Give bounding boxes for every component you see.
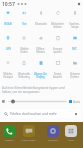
- button[interactable]: Bildschirm drehen: [49, 11, 66, 36]
- staticText: Mobiler: [3, 72, 13, 75]
- button[interactable]: NFC: [66, 36, 83, 61]
- staticText: sparen: [53, 50, 62, 53]
- staticText: Hotspot: [3, 75, 13, 78]
- button[interactable]: Nachrichten: [23, 125, 35, 137]
- staticText: Nachrichten: [21, 138, 36, 141]
- staticText: Internet: [48, 138, 58, 141]
- button[interactable]: Offline- Modus: [32, 36, 49, 61]
- staticText: drehen: [53, 25, 62, 28]
- button[interactable]: GPS: [0, 36, 16, 61]
- staticText: Display: [36, 75, 45, 78]
- staticText: Telefon: [5, 138, 14, 141]
- staticText: Tethering: [18, 75, 30, 78]
- button[interactable]: Auto brightness: [69, 100, 72, 103]
- staticText: Taschen-: [69, 22, 80, 25]
- button[interactable]: Bluetooth- Tethering: [16, 61, 32, 86]
- staticText: Ordner: [70, 75, 79, 78]
- staticText: Energie-: [53, 47, 63, 50]
- staticText: Always On: [34, 72, 47, 75]
- staticText: GPS: [6, 47, 11, 50]
- button[interactable]: Smart- Ansicht: [49, 61, 66, 86]
- button[interactable]: Brightness: [1, 99, 6, 104]
- staticText: Daten: [20, 50, 28, 53]
- button[interactable]: Telefon: [3, 125, 15, 137]
- button[interactable]: Ton: [16, 11, 32, 36]
- staticText: halten, um sie anzupassen.: [2, 90, 41, 94]
- staticText: Bluetooth-: [18, 72, 31, 75]
- staticText: Bluetooth: [35, 22, 47, 25]
- staticText: Auf eine Schnelleinstellungstaste tippen…: [2, 86, 65, 90]
- staticText: WLAN: [4, 22, 12, 25]
- staticText: Bildschirm: [51, 22, 64, 25]
- staticText: Sicherer: [70, 72, 80, 75]
- staticText: Modus: [36, 50, 45, 53]
- staticText: Offline-: [36, 47, 45, 50]
- button[interactable]: Apps: [65, 125, 77, 137]
- button[interactable]: Telefon durchsuchen und mehr: [1, 109, 81, 118]
- button[interactable]: Mobiler Hotspot: [0, 61, 16, 86]
- button[interactable]: Sicherer Ordner: [66, 61, 83, 86]
- staticText: Apps: [68, 138, 74, 141]
- button[interactable]: Always On Display: [32, 61, 49, 86]
- button[interactable]: Bluetooth: [32, 11, 49, 36]
- button[interactable]: Taschen- lampe: [66, 11, 83, 36]
- staticText: Mobile: [20, 47, 29, 50]
- button[interactable]: WLAN: [0, 11, 16, 36]
- staticText: Smart-: [54, 72, 62, 75]
- staticText: 10:57: [2, 1, 15, 8]
- staticText: lampe: [71, 25, 79, 28]
- staticText: Telefon durchsuchen und mehr: [10, 112, 57, 116]
- button[interactable]: Mobile Daten: [16, 36, 32, 61]
- staticText: Auto: [73, 100, 81, 104]
- staticText: Ansicht: [53, 75, 62, 78]
- button[interactable]: Internet: [47, 125, 59, 137]
- staticText: Ton: [22, 22, 27, 25]
- staticText: NFC: [72, 47, 77, 50]
- button[interactable]: Energie- sparen: [49, 36, 66, 61]
